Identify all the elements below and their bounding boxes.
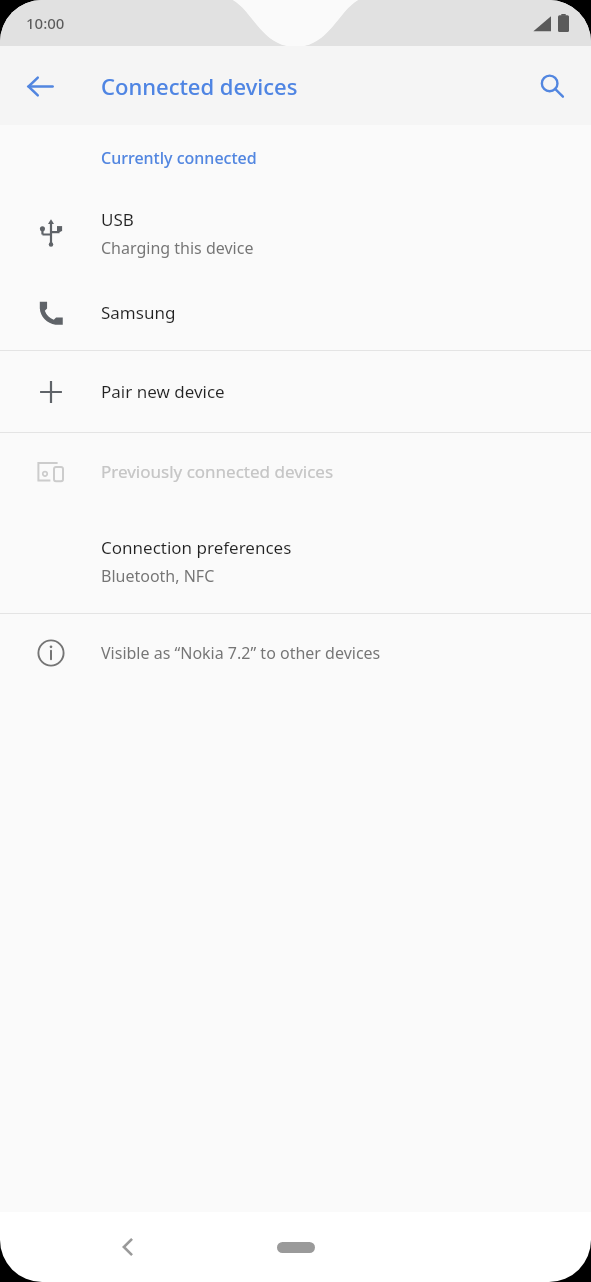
staticText: Samsung <box>101 301 176 324</box>
staticText: Charging this device <box>101 237 254 259</box>
staticText: Connection preferences <box>101 536 292 559</box>
button[interactable]: Previously connected devices <box>0 433 591 510</box>
button[interactable]: Samsung <box>0 275 591 350</box>
button[interactable]: Navigate up <box>12 58 68 114</box>
staticText: Previously connected devices <box>101 460 334 483</box>
staticText: 10:00 <box>26 13 65 33</box>
button[interactable]: Connection preferences <box>0 510 591 613</box>
staticText: Bluetooth, NFC <box>101 565 215 587</box>
button[interactable]: Visible as “Nokia 7.2” to other devices <box>0 614 591 692</box>
staticText: Currently connected <box>101 147 257 169</box>
staticText: Pair new device <box>101 380 225 403</box>
button[interactable]: USB <box>0 191 591 275</box>
button[interactable]: Back <box>98 1217 158 1277</box>
staticText: Visible as “Nokia 7.2” to other devices <box>101 642 381 664</box>
staticText: USB <box>101 208 134 231</box>
button[interactable]: Pair new device <box>0 351 591 432</box>
staticText: Connected devices <box>101 71 298 101</box>
button[interactable]: Home <box>251 1225 341 1269</box>
button[interactable]: Search <box>524 58 580 114</box>
